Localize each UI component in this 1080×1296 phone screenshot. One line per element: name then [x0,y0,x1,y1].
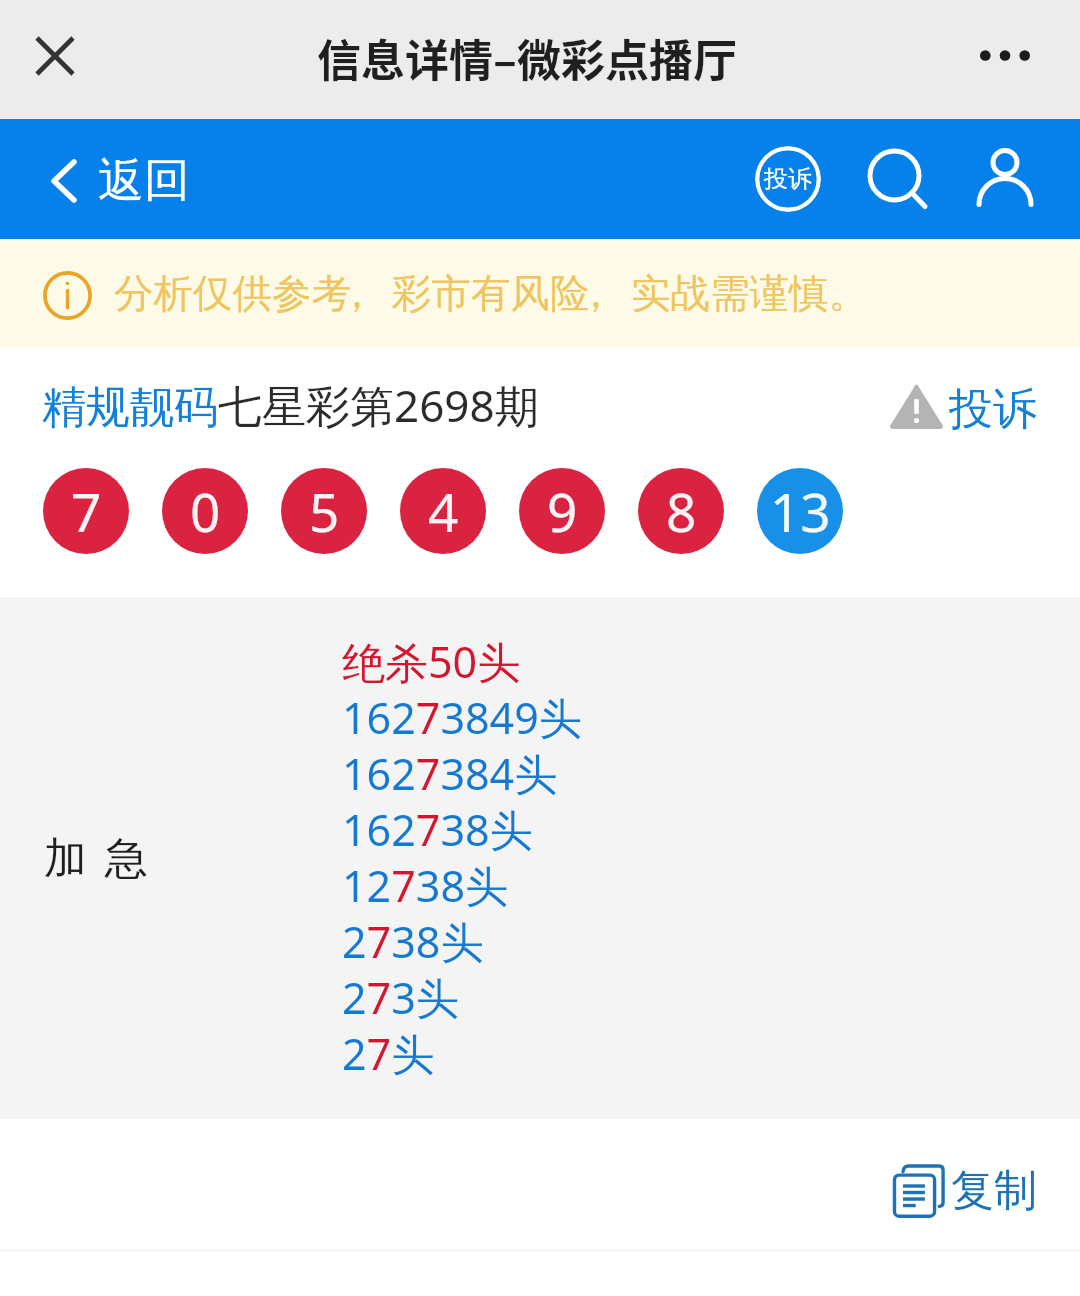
staticText: 绝杀50头 16273849头 1627384头 162738头 12738头 … [342,632,582,1083]
staticText: 彩市有风险 [392,269,590,319]
staticText: 加 [44,832,87,886]
button[interactable]: 返回 [51,151,190,211]
staticText: 急 [105,832,148,886]
button[interactable]: 投诉 [889,378,1037,433]
staticText: 投诉 [949,382,1037,437]
staticText: 5 [309,475,340,547]
staticText: 精规靓码七星彩第2698期 [42,375,539,435]
staticText: 9 [547,475,578,547]
staticText: 返回 [98,152,190,210]
staticText: 复制 [951,1164,1037,1218]
staticText: ， [337,269,377,319]
staticText: 4 [428,475,459,547]
staticText: 实战需谨慎。 [631,269,868,319]
staticText: 13 [770,475,831,547]
staticText: 分析仅供参考 [114,269,351,319]
staticText: 投诉 [764,164,812,194]
button[interactable]: Close [20,21,90,91]
staticText: 8 [666,475,697,547]
button[interactable]: More options [970,20,1040,90]
button[interactable]: 投诉 [755,146,821,212]
staticText: 7 [71,475,102,547]
staticText: 信息详情–微彩点播厅 [317,26,737,90]
button[interactable]: 复制 [891,1161,1037,1221]
button[interactable]: Profile [974,147,1036,209]
staticText: 0 [190,475,221,547]
button[interactable]: Search [863,146,931,214]
staticText: ， [576,269,616,319]
